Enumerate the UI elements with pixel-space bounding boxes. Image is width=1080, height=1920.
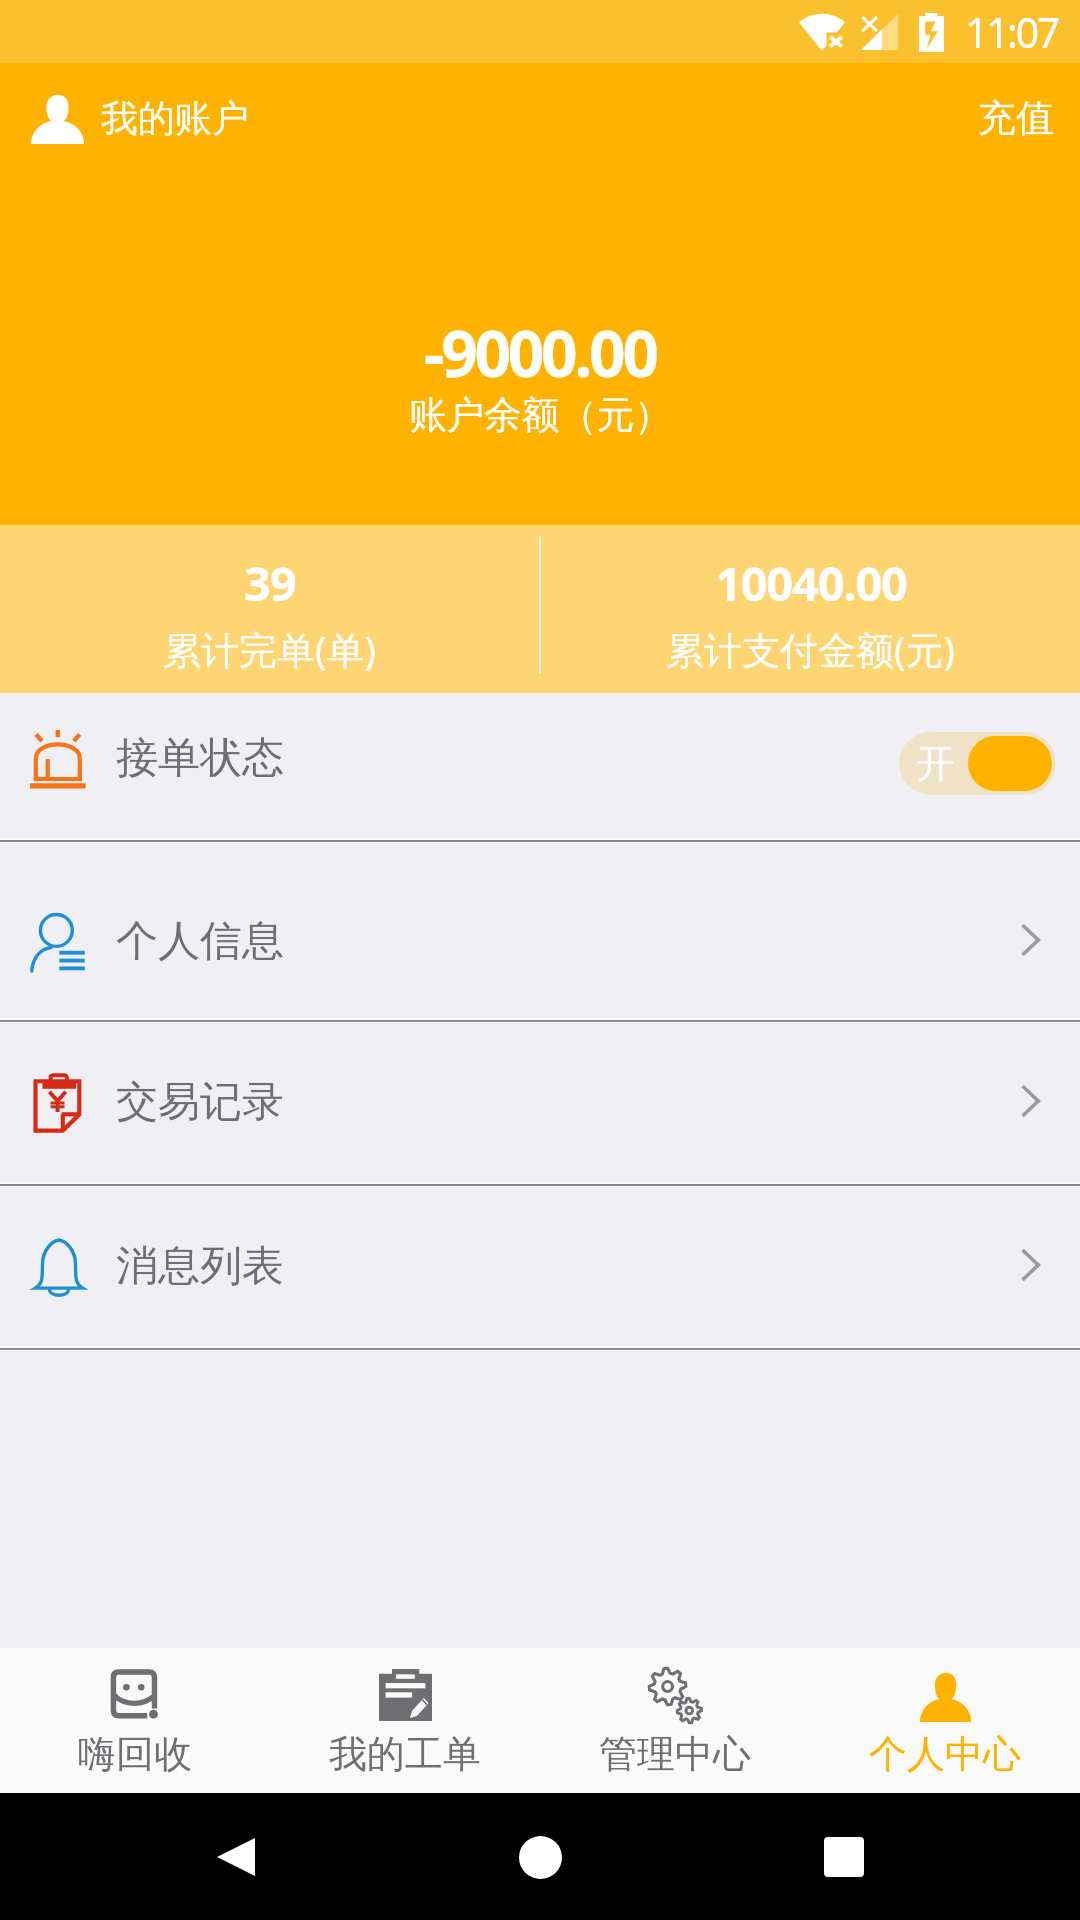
button[interactable]: 管理中心 xyxy=(540,1648,810,1793)
staticText: 我的账户 xyxy=(101,95,249,142)
staticText: 嗨回收 xyxy=(78,1730,192,1778)
staticText: 账户余额（元） xyxy=(409,391,672,439)
button[interactable]: 交易记录 xyxy=(0,1023,1080,1182)
button[interactable]: 嗨回收 xyxy=(0,1648,270,1793)
button[interactable]: Back xyxy=(206,1827,266,1887)
staticText: 管理中心 xyxy=(599,1730,751,1778)
button[interactable]: Home xyxy=(510,1827,570,1887)
button[interactable]: 开 xyxy=(899,732,1056,795)
staticText: 11:07 xyxy=(965,4,1058,60)
staticText: 累计完单(单) xyxy=(163,623,376,675)
button[interactable]: 个人信息 xyxy=(0,843,1080,1018)
staticText: 我的工单 xyxy=(329,1730,481,1778)
button[interactable]: 消息列表 xyxy=(0,1187,1080,1346)
staticText: 消息列表 xyxy=(116,1240,284,1293)
staticText: 39 xyxy=(244,551,296,615)
staticText: 充值 xyxy=(978,94,1054,142)
staticText: 开 xyxy=(916,739,955,788)
button[interactable]: 10040.00 xyxy=(541,525,1080,693)
button[interactable]: 接单状态 xyxy=(0,693,1080,838)
button[interactable]: 充值 xyxy=(952,76,1080,160)
button[interactable]: 个人中心 xyxy=(810,1648,1080,1793)
staticText: -9000.00 xyxy=(424,309,656,396)
staticText: 个人信息 xyxy=(116,915,284,968)
staticText: 交易记录 xyxy=(116,1076,284,1129)
staticText: 接单状态 xyxy=(116,732,284,785)
staticText: 累计支付金额(元) xyxy=(666,623,955,675)
staticText: 10040.00 xyxy=(715,551,907,615)
staticText: 个人中心 xyxy=(869,1730,1021,1778)
button[interactable]: 我的工单 xyxy=(270,1648,540,1793)
button[interactable]: Recents xyxy=(814,1827,874,1887)
button[interactable]: 39 xyxy=(0,525,539,693)
